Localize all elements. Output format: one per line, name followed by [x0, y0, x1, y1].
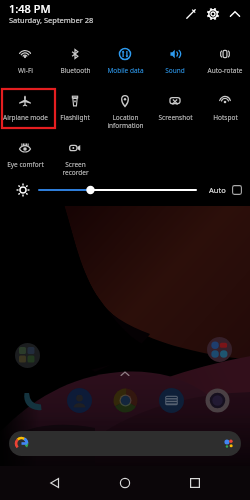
button[interactable]: Home	[110, 468, 140, 498]
button[interactable]: Google folder	[15, 343, 40, 368]
button[interactable]: Back	[40, 468, 70, 498]
button[interactable]: Mobile data	[100, 38, 150, 85]
staticText: Sound	[165, 66, 185, 75]
button[interactable]: Sound	[150, 38, 200, 85]
button[interactable]: Chrome	[112, 387, 138, 413]
button[interactable]: Recent apps	[180, 468, 210, 498]
button[interactable]: Messages	[158, 387, 184, 413]
staticText: Flashlight	[60, 113, 90, 122]
button[interactable]: Screenshot	[150, 85, 200, 132]
button[interactable]: Edit	[180, 3, 202, 25]
button[interactable]: Bluetooth	[50, 38, 100, 85]
button[interactable]: Wi-Fi	[0, 38, 50, 85]
button[interactable]: Location information	[100, 85, 150, 132]
button[interactable]: Brightness	[38, 183, 197, 197]
staticText: Screenshot	[158, 113, 193, 122]
staticText: Hotspot	[213, 113, 238, 122]
staticText: Saturday, September 28	[9, 15, 94, 25]
staticText: Auto	[209, 185, 226, 195]
button[interactable]: Collapse	[224, 3, 246, 25]
staticText: Airplane mode	[3, 113, 48, 122]
button[interactable]: Hotspot	[200, 85, 250, 132]
button[interactable]: Eye comfort	[0, 132, 50, 179]
staticText: Auto-rotate	[207, 66, 243, 75]
button[interactable]: Google search	[9, 431, 241, 456]
staticText: Location information	[107, 113, 144, 130]
button[interactable]: Flashlight	[50, 85, 100, 132]
button[interactable]: Settings	[202, 3, 224, 25]
staticText: Wi-Fi	[18, 66, 33, 75]
button[interactable]: Auto-rotate	[200, 38, 250, 85]
staticText: Eye comfort	[7, 160, 44, 169]
staticText: Bluetooth	[60, 66, 91, 75]
staticText: 1:48 PM	[9, 1, 51, 16]
button[interactable]: Airplane mode	[0, 85, 50, 132]
button[interactable]: Camera	[204, 387, 230, 413]
button[interactable]: Screen recorder	[50, 132, 100, 179]
staticText: Screen recorder	[62, 160, 89, 177]
button[interactable]: Contacts	[66, 387, 92, 413]
button[interactable]: Auto brightness	[209, 185, 242, 195]
staticText: Mobile data	[107, 66, 144, 75]
button[interactable]: Social folder	[207, 337, 232, 362]
button[interactable]: Phone	[20, 387, 46, 413]
